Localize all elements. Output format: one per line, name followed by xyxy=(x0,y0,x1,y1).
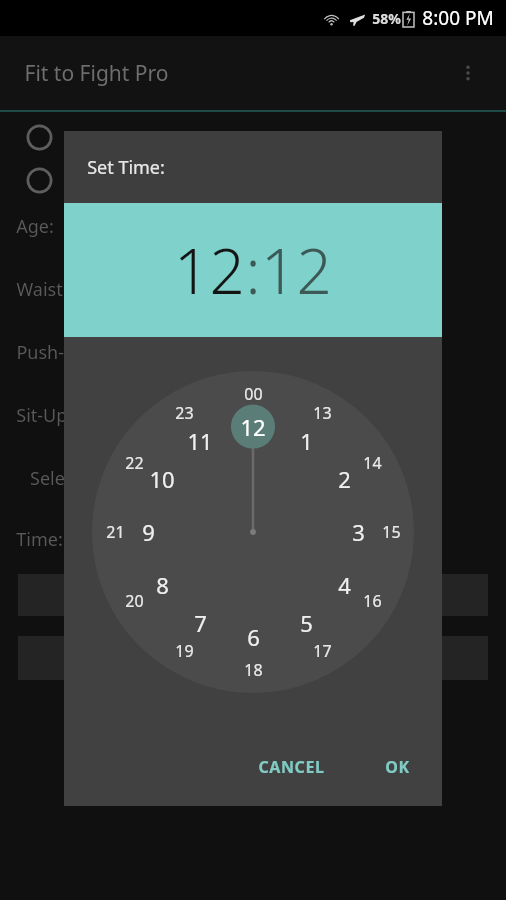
button[interactable]: 8 xyxy=(142,565,182,605)
staticText: 11 xyxy=(187,426,213,456)
button[interactable]: START xyxy=(18,636,488,680)
staticText: Time: xyxy=(16,527,63,552)
button[interactable]: 19 xyxy=(164,631,204,671)
staticText: 18 xyxy=(244,659,263,681)
staticText: 6 xyxy=(247,622,260,652)
staticText: 19 xyxy=(175,640,194,662)
staticText: 3 xyxy=(352,517,365,547)
staticText: 10 xyxy=(149,464,175,494)
button[interactable]: 00 xyxy=(233,374,273,414)
button[interactable]: 18 xyxy=(233,650,273,690)
button[interactable]: 22 xyxy=(114,443,154,483)
button[interactable]: 12 xyxy=(233,407,273,447)
staticText: 12 xyxy=(261,228,332,312)
button[interactable]: 14 xyxy=(352,443,392,483)
staticText: CANCEL xyxy=(258,756,325,778)
staticText: 12 xyxy=(240,412,266,442)
button[interactable]: CANCEL xyxy=(244,746,339,788)
staticText: 21 xyxy=(106,521,125,543)
staticText: Set Time: xyxy=(87,155,165,180)
staticText: Select xyxy=(30,466,80,491)
staticText: 12 xyxy=(174,228,245,312)
button[interactable]: 6 xyxy=(233,617,273,657)
button[interactable]: 16 xyxy=(352,581,392,621)
button[interactable]: 2 xyxy=(324,459,364,499)
button[interactable]: More options xyxy=(444,49,492,97)
staticText: 14 xyxy=(363,452,382,474)
staticText: OK xyxy=(385,756,410,778)
staticText: M xyxy=(67,125,84,150)
staticText: 23 xyxy=(175,402,194,424)
button[interactable]: 15 xyxy=(371,512,411,552)
button[interactable]: TOTAL SCORE xyxy=(18,574,488,616)
staticText: Push-Ups: xyxy=(16,340,102,365)
staticText: : xyxy=(245,228,261,312)
staticText: 13 xyxy=(313,402,332,424)
staticText: 58% xyxy=(372,9,401,28)
button[interactable]: 1 xyxy=(286,421,326,461)
button[interactable]: 20 xyxy=(114,581,154,621)
button[interactable]: 23 xyxy=(164,393,204,433)
button[interactable]: 7 xyxy=(180,603,220,643)
button[interactable]: 17 xyxy=(302,631,342,671)
staticText: 4 xyxy=(338,570,351,600)
button[interactable]: 3 xyxy=(338,512,378,552)
button[interactable]: 10 xyxy=(142,459,182,499)
staticText: 5 xyxy=(300,608,313,638)
staticText: 17 xyxy=(313,640,332,662)
button[interactable]: 12 xyxy=(64,203,442,337)
staticText: Age: xyxy=(16,214,54,239)
staticText: 16 xyxy=(363,590,382,612)
staticText: 9 xyxy=(142,517,155,547)
staticText: 15 xyxy=(382,521,401,543)
staticText: 20 xyxy=(125,590,144,612)
button[interactable]: 4 xyxy=(324,565,364,605)
staticText: Waist: xyxy=(16,277,68,302)
staticText: 8 xyxy=(156,570,169,600)
staticText: START xyxy=(229,647,277,669)
button[interactable]: 11 xyxy=(180,421,220,461)
staticText: Sit-Ups: xyxy=(16,403,81,428)
button[interactable]: 13 xyxy=(302,393,342,433)
staticText: 00 xyxy=(244,383,263,405)
button[interactable]: 9 xyxy=(128,512,168,552)
staticText: 2 xyxy=(338,464,351,494)
staticText: 22 xyxy=(125,452,144,474)
staticText: Fit to Fight Pro xyxy=(24,59,169,88)
staticText: 8:00 PM xyxy=(422,5,494,31)
staticText: 7 xyxy=(194,608,207,638)
button[interactable]: 21 xyxy=(95,512,135,552)
button[interactable]: 5 xyxy=(286,603,326,643)
staticText: 1 xyxy=(300,426,313,456)
button[interactable]: OK xyxy=(371,746,424,788)
